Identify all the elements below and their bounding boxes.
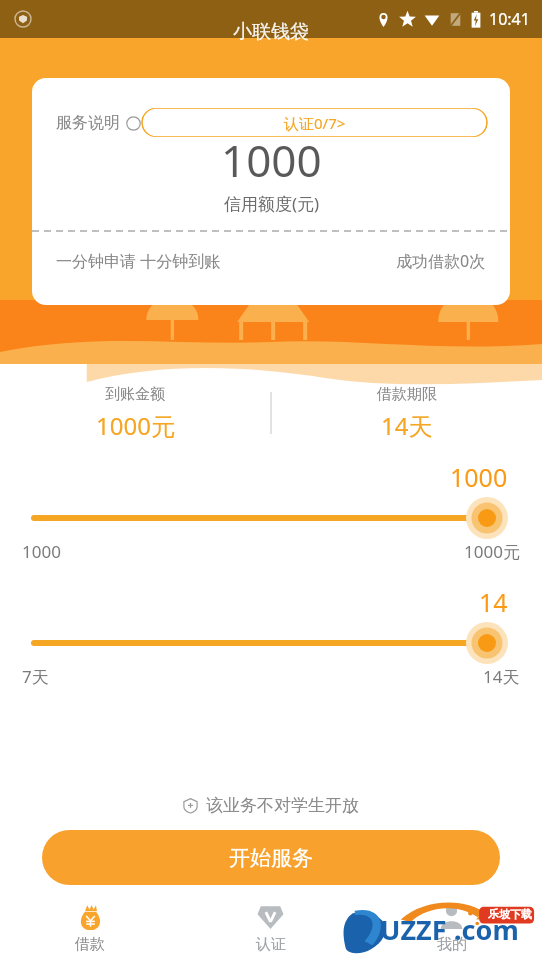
staticText: 小联钱袋 [233,20,309,44]
staticText: 1000元 [96,409,175,442]
button[interactable]: 开始服务 [42,830,500,885]
staticText: 认证0/7> [284,113,346,133]
button[interactable]: 认证 [180,893,361,963]
staticText: UZZF [380,911,447,948]
staticText: 1000 [450,460,508,494]
staticText: 该业务不对学生开放 [206,795,359,816]
staticText: 开始服务 [229,845,313,871]
button[interactable]: 借款 [0,893,180,963]
staticText: 到账金额 [105,385,165,404]
staticText: 1000元 [464,540,520,563]
staticText: 认证 [256,935,286,954]
staticText: 14天 [483,665,520,688]
staticText: 7天 [22,665,49,688]
staticText: .com [454,911,519,948]
staticText: 14 [479,585,508,619]
button[interactable]: 我的 [361,893,542,963]
button[interactable]: Slider [20,623,522,663]
button[interactable]: 认证0/7> [141,108,488,137]
staticText: 成功借款0次 [396,250,486,272]
staticText: 一分钟申请 十分钟到账 [56,250,221,272]
staticText: 乐坡下载 [488,907,532,921]
staticText: 借款 [75,935,105,954]
staticText: 借款期限 [377,385,437,404]
staticText: 1000 [22,540,61,563]
staticText: 信用额度(元) [224,192,320,215]
button[interactable]: 服务说明 [56,113,141,133]
button[interactable]: Slider [20,498,522,538]
staticText: 我的 [437,935,467,954]
staticText: 14天 [381,409,433,442]
staticText: 服务说明 [56,113,120,133]
staticText: 10:41 [489,8,530,30]
staticText: 1000 [221,130,322,190]
